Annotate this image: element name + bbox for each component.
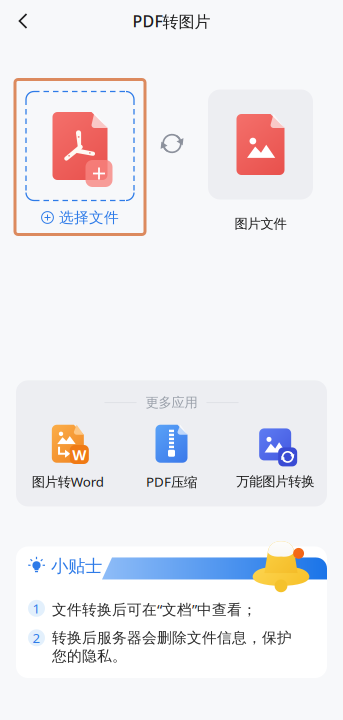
button[interactable]: W bbox=[16, 423, 120, 490]
staticText: 2 bbox=[32, 629, 40, 647]
staticText: 选择文件 bbox=[59, 208, 119, 226]
staticText: 更多应用 bbox=[145, 394, 197, 411]
button[interactable]: 万能图片转换 bbox=[223, 423, 327, 490]
staticText: W bbox=[72, 445, 86, 464]
button[interactable]: PDF压缩 bbox=[120, 423, 223, 490]
staticText: 文件转换后可在“文档”中查看； bbox=[52, 599, 257, 619]
staticText: 转换后服务器会删除文件信息，保护您的隐私。 bbox=[52, 629, 292, 665]
staticText: 图片转Word bbox=[32, 473, 104, 490]
staticText: 万能图片转换 bbox=[236, 473, 314, 490]
staticText: 图片文件 bbox=[234, 215, 286, 232]
staticText: PDF压缩 bbox=[146, 473, 197, 490]
button[interactable]: 选择文件 bbox=[15, 79, 145, 234]
staticText: 小贴士 bbox=[51, 555, 102, 577]
staticText: PDF转图片 bbox=[132, 10, 210, 32]
button[interactable]: Back bbox=[0, 3, 40, 39]
staticText: 1 bbox=[32, 599, 40, 617]
